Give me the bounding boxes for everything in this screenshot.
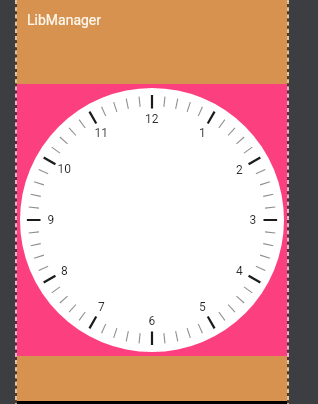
button[interactable]: LibManager bbox=[16, 0, 287, 84]
staticText: LibManager bbox=[27, 12, 102, 28]
button[interactable]: Analog clock bbox=[20, 88, 284, 352]
